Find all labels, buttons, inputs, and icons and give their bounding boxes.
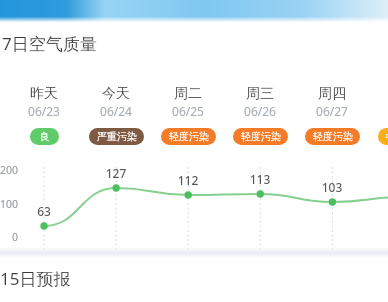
staticText: 103 — [317, 179, 347, 195]
button[interactable]: 周五 — [369, 85, 388, 145]
staticText: 15日预报 — [0, 267, 71, 290]
staticText: 今天 — [102, 85, 130, 103]
staticText: 昨天 — [30, 85, 58, 103]
staticText: 63 — [29, 203, 59, 219]
staticText: 06/26 — [244, 103, 276, 119]
staticText: 轻度污染 — [241, 130, 281, 143]
button[interactable]: 昨天 — [8, 85, 80, 145]
staticText: 7日空气质量 — [2, 32, 97, 55]
button[interactable]: 今天 — [80, 85, 152, 145]
button[interactable]: 周二 — [152, 85, 224, 145]
staticText: 轻度污染 — [169, 130, 209, 143]
staticText: 127 — [101, 165, 131, 181]
staticText: 06/25 — [172, 103, 204, 119]
staticText: 06/24 — [100, 103, 132, 119]
staticText: 0 — [0, 230, 18, 244]
button[interactable]: 周三 — [224, 85, 296, 145]
staticText: 严重污染 — [97, 130, 137, 143]
staticText: 113 — [245, 171, 275, 187]
staticText: 周三 — [246, 85, 274, 103]
button[interactable]: 周四 — [296, 85, 368, 145]
staticText: 200 — [0, 163, 18, 177]
staticText: 周四 — [318, 85, 346, 103]
staticText: 06/23 — [28, 103, 60, 119]
staticText: 112 — [173, 172, 203, 188]
staticText: 中度污染 — [386, 130, 388, 143]
staticText: 轻度污染 — [313, 130, 353, 143]
staticText: 06/27 — [316, 103, 348, 119]
staticText: 良 — [40, 130, 50, 143]
staticText: 100 — [0, 197, 18, 211]
staticText: 周二 — [174, 85, 202, 103]
